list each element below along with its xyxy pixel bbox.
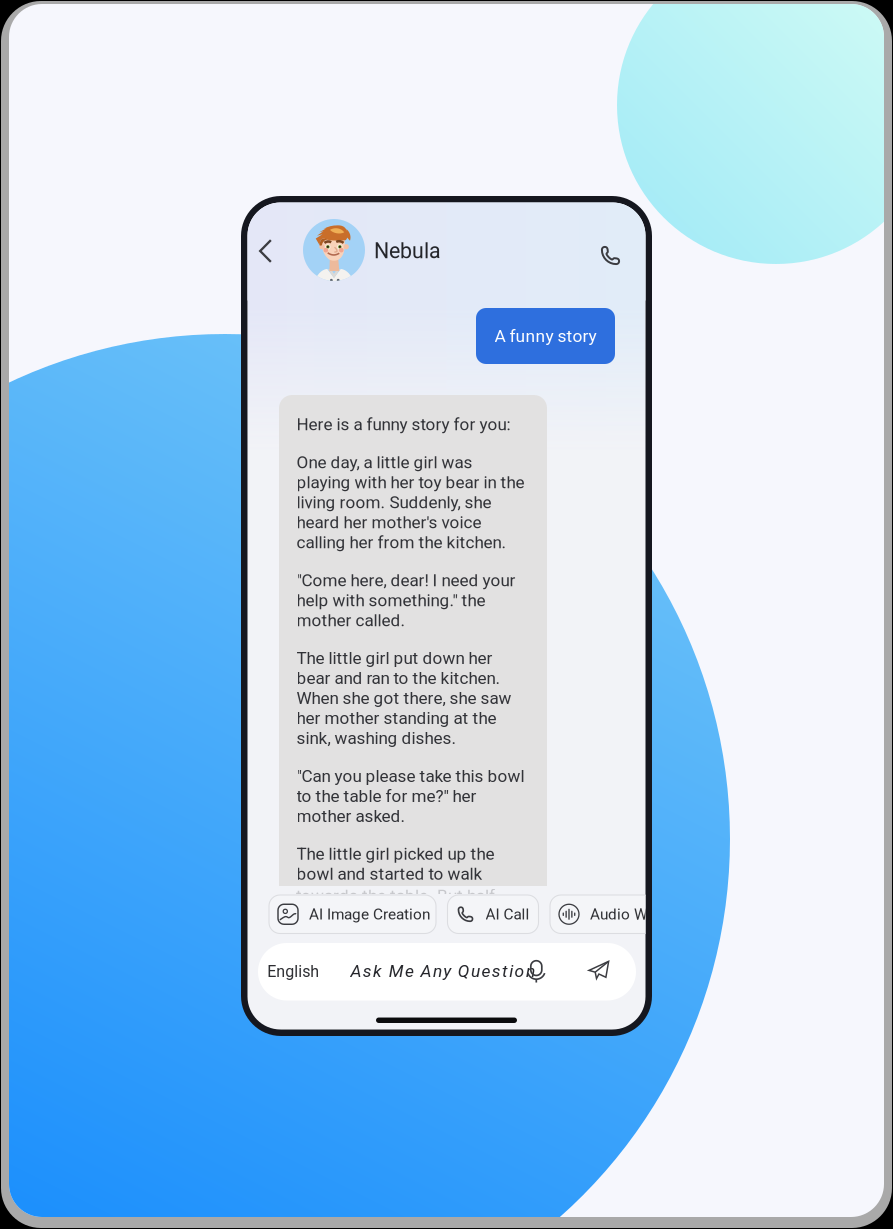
staticText: The little girl put down her bear and ra… xyxy=(296,648,511,748)
staticText: AI Call xyxy=(485,905,529,923)
button[interactable]: Send xyxy=(584,955,616,987)
button[interactable]: AI Call xyxy=(447,895,538,933)
staticText: "Can you please take this bowl to the ta… xyxy=(296,766,524,826)
staticText: AI Image Creation xyxy=(309,905,430,923)
staticText: Here is a funny story for you: xyxy=(296,414,510,434)
button[interactable]: Audio Writing xyxy=(550,895,690,933)
staticText: Audio Writing xyxy=(590,905,682,923)
staticText: towards the table. But half-way xyxy=(296,886,500,926)
button[interactable]: AI Image Creation xyxy=(269,895,436,933)
button[interactable]: Back xyxy=(244,229,286,273)
staticText: "Come here, dear! I need your help with … xyxy=(296,570,515,630)
staticText: The little girl picked up the bowl and s… xyxy=(296,844,500,924)
staticText: English xyxy=(267,962,319,981)
staticText: Ask Me Any Question xyxy=(350,961,535,981)
button[interactable]: Call xyxy=(589,233,631,277)
button[interactable]: Voice input xyxy=(523,956,549,986)
staticText: One day, a little girl was playing with … xyxy=(296,452,524,552)
staticText: Nebula xyxy=(374,238,441,263)
staticText: A funny story xyxy=(494,326,596,346)
